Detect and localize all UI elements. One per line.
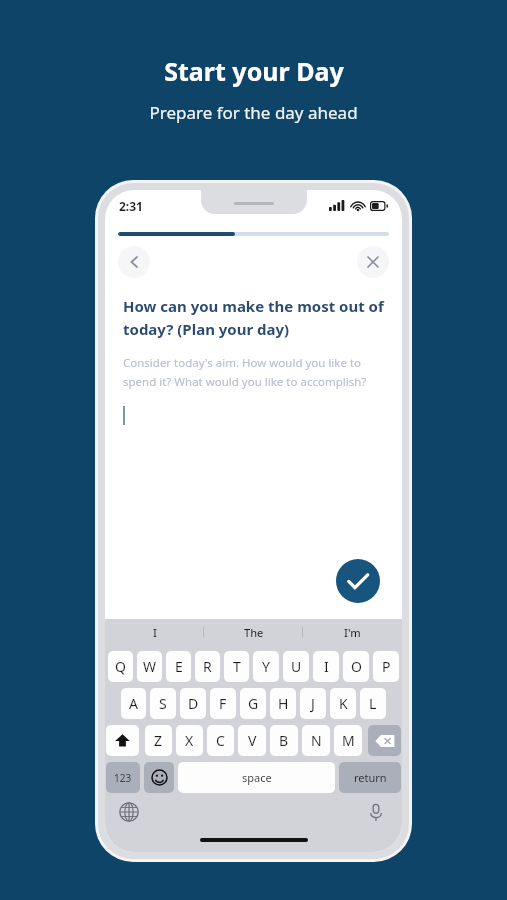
- staticText: H: [278, 694, 289, 713]
- staticText: R: [203, 657, 212, 676]
- button[interactable]: T: [224, 651, 249, 682]
- button[interactable]: Backspace: [368, 725, 401, 756]
- staticText: Q: [115, 657, 126, 676]
- button[interactable]: Shift: [106, 725, 139, 756]
- staticText: space: [242, 770, 272, 785]
- staticText: I: [324, 657, 329, 676]
- staticText: Consider today's aim. How would you like…: [123, 355, 384, 389]
- button[interactable]: E: [166, 651, 191, 682]
- button[interactable]: M: [334, 725, 362, 756]
- staticText: U: [291, 657, 302, 676]
- staticText: O: [351, 657, 362, 676]
- button[interactable]: V: [238, 725, 266, 756]
- button[interactable]: Z: [145, 725, 172, 756]
- staticText: The: [244, 625, 264, 640]
- button[interactable]: I: [313, 651, 339, 682]
- staticText: E: [175, 657, 183, 676]
- button[interactable]: S: [150, 688, 176, 719]
- staticText: P: [382, 657, 391, 676]
- staticText: A: [129, 694, 138, 713]
- button[interactable]: X: [176, 725, 203, 756]
- button[interactable]: L: [360, 688, 386, 719]
- button[interactable]: Q: [108, 651, 133, 682]
- staticText: V: [248, 731, 257, 750]
- staticText: K: [339, 694, 348, 713]
- staticText: J: [311, 694, 315, 713]
- button[interactable]: G: [240, 688, 266, 719]
- button[interactable]: space: [178, 762, 335, 793]
- button[interactable]: Submit: [336, 559, 380, 603]
- button[interactable]: Emoji: [144, 762, 174, 793]
- button[interactable]: U: [283, 651, 309, 682]
- staticText: Y: [262, 657, 270, 676]
- button[interactable]: H: [270, 688, 296, 719]
- button[interactable]: Change keyboard: [119, 802, 141, 824]
- staticText: Z: [154, 731, 163, 750]
- button[interactable]: K: [330, 688, 356, 719]
- staticText: T: [233, 657, 241, 676]
- staticText: 2:31: [119, 198, 143, 214]
- staticText: G: [248, 694, 259, 713]
- button[interactable]: F: [210, 688, 236, 719]
- button[interactable]: Back: [118, 246, 150, 278]
- staticText: I'm: [344, 625, 361, 640]
- button[interactable]: D: [180, 688, 206, 719]
- button[interactable]: The: [204, 619, 303, 646]
- button[interactable]: return: [339, 762, 401, 793]
- button[interactable]: P: [373, 651, 399, 682]
- button[interactable]: I: [105, 619, 204, 646]
- button[interactable]: Close: [357, 246, 389, 278]
- button[interactable]: Y: [253, 651, 279, 682]
- staticText: return: [354, 770, 387, 785]
- staticText: D: [188, 694, 199, 713]
- staticText: Prepare for the day ahead: [149, 101, 358, 124]
- button[interactable]: J: [300, 688, 326, 719]
- staticText: M: [342, 731, 355, 750]
- button[interactable]: 123: [106, 762, 140, 793]
- button[interactable]: O: [343, 651, 369, 682]
- button[interactable]: R: [195, 651, 220, 682]
- staticText: F: [219, 694, 227, 713]
- button[interactable]: N: [302, 725, 330, 756]
- staticText: W: [143, 657, 157, 676]
- button[interactable]: W: [137, 651, 162, 682]
- staticText: 123: [114, 771, 132, 785]
- staticText: C: [216, 731, 225, 750]
- button[interactable]: C: [207, 725, 234, 756]
- staticText: B: [279, 731, 289, 750]
- button[interactable]: Dictate: [366, 802, 388, 824]
- button[interactable]: I'm: [303, 619, 402, 646]
- staticText: X: [185, 731, 194, 750]
- staticText: N: [311, 731, 322, 750]
- staticText: L: [369, 694, 377, 713]
- staticText: I: [153, 625, 157, 640]
- staticText: How can you make the most out of today? …: [123, 296, 384, 339]
- staticText: Start your Day: [164, 54, 344, 88]
- button[interactable]: A: [121, 688, 146, 719]
- button[interactable]: B: [270, 725, 298, 756]
- staticText: S: [159, 694, 167, 713]
